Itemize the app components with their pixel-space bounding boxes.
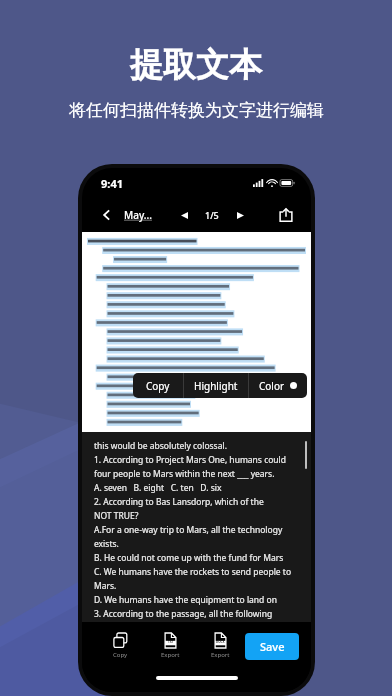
staticText: 提取文本 <box>130 44 262 86</box>
staticText: 9:41 <box>101 176 123 191</box>
button[interactable]: Share <box>273 202 299 228</box>
button[interactable]: Next page <box>231 206 249 224</box>
button[interactable]: TXT <box>145 622 195 670</box>
button[interactable]: DOCX <box>195 622 245 670</box>
staticText: 1/5 <box>205 209 219 221</box>
staticText: Copy <box>146 379 170 393</box>
staticText: Save <box>260 639 285 654</box>
staticText: May... <box>124 208 152 222</box>
staticText: Copy <box>113 651 128 659</box>
staticText: DOCX <box>216 640 225 644</box>
staticText: 1. According to Project Mars One, humans… <box>94 454 297 466</box>
staticText: exists. <box>94 538 119 550</box>
button[interactable]: Color <box>249 373 307 398</box>
staticText: Highlight <box>194 379 238 393</box>
staticText: this would be absolutely colossal. <box>94 440 227 452</box>
staticText: Export <box>161 651 180 659</box>
staticText: four people to Mars within the next ___ … <box>94 468 275 480</box>
button[interactable]: May... <box>124 208 152 222</box>
staticText: A. seven B. eight C. ten D. six <box>94 482 222 494</box>
staticText: 将任何扫描件转换为文字进行编辑 <box>69 100 324 121</box>
staticText: B. He could not come up with the fund fo… <box>94 552 297 564</box>
button[interactable]: Copy <box>96 622 145 670</box>
button[interactable]: Copy <box>133 373 183 398</box>
button[interactable]: Back <box>94 202 120 228</box>
staticText: NOT TRUE? <box>94 510 139 522</box>
staticText: D. We humans have the equipment to land … <box>94 594 297 606</box>
staticText: C. We humans have the rockets to send pe… <box>94 566 292 578</box>
staticText: Mars. <box>94 580 117 592</box>
button[interactable]: Save <box>245 633 299 660</box>
button[interactable]: Previous page <box>175 206 193 224</box>
staticText: Color <box>259 379 285 393</box>
staticText: Export <box>211 651 230 659</box>
button[interactable]: Highlight <box>184 373 248 398</box>
staticText: 2. According to Bas Lansdorp, which of t… <box>94 496 297 508</box>
staticText: A.For a one-way trip to Mars, all the te… <box>94 524 283 536</box>
staticText: TXT <box>168 640 174 644</box>
staticText: 3. According to the passage, all the fol… <box>94 608 273 620</box>
